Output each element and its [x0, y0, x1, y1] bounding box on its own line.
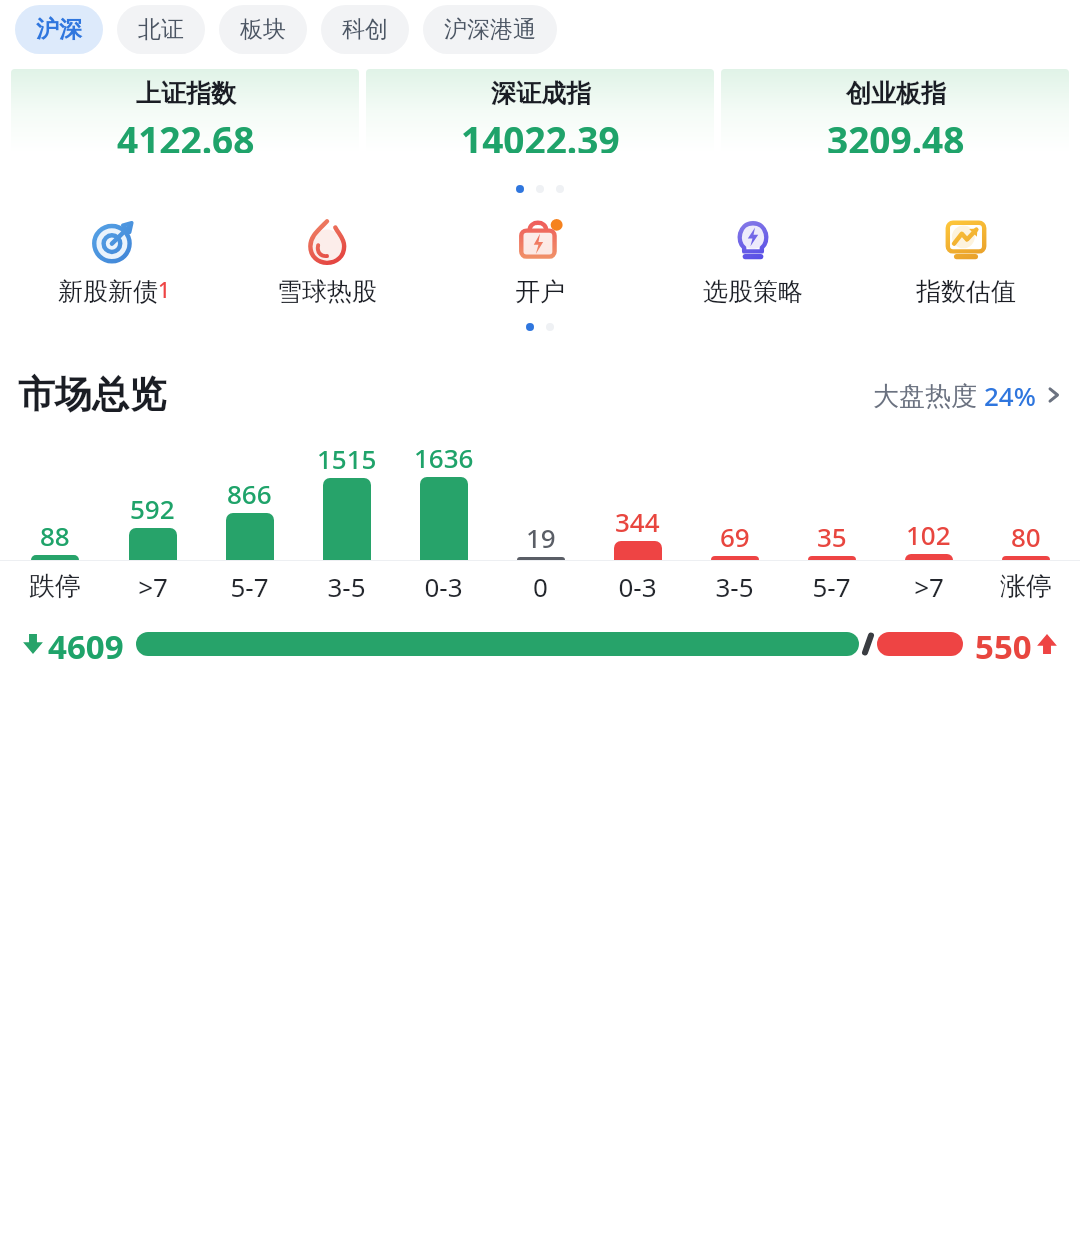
staticText: 指数估值 [916, 276, 1016, 307]
staticText: 550 [975, 624, 1032, 664]
button[interactable]: 35 [783, 519, 880, 560]
button[interactable]: 866 [201, 476, 298, 560]
staticText: 35 [817, 519, 847, 554]
button[interactable]: 新股新债 [8, 215, 220, 307]
staticText: 北证 [138, 15, 184, 44]
button[interactable]: 上证指数 [11, 69, 359, 153]
button[interactable]: 板块 [219, 5, 307, 54]
staticText: 沪深港通 [444, 15, 536, 44]
staticText: 开户 [515, 276, 565, 307]
staticText: 3-5 [327, 569, 366, 604]
staticText: 新股新债 [58, 276, 158, 307]
button[interactable]: 北证 [117, 5, 205, 54]
staticText: 1636 [414, 440, 474, 475]
staticText: 866 [227, 476, 272, 511]
staticText: 深证成指 [491, 78, 591, 109]
staticText: 科创 [342, 15, 388, 44]
other: Down [22, 633, 44, 655]
button[interactable]: 大盘热度 [873, 377, 1062, 413]
staticText: 0-3 [424, 569, 463, 604]
button[interactable]: 592 [104, 491, 201, 560]
staticText: 市场总览 [18, 371, 166, 418]
staticText: 4122.68 [117, 114, 255, 153]
staticText: 板块 [240, 15, 286, 44]
staticText: 上证指数 [136, 78, 236, 109]
staticText: 0 [533, 569, 548, 604]
staticText: >7 [914, 569, 944, 604]
button[interactable]: 创业板指 [721, 69, 1069, 153]
staticText: 4609 [48, 624, 124, 664]
staticText: 3-5 [715, 569, 754, 604]
button[interactable]: 344 [589, 504, 686, 560]
staticText: 14022.39 [461, 114, 620, 153]
staticText: 沪深 [36, 15, 82, 44]
button[interactable]: 选股策略 [646, 215, 859, 307]
button[interactable]: 科创 [321, 5, 409, 54]
staticText: 5-7 [812, 569, 851, 604]
button[interactable]: 19 [492, 520, 589, 560]
button[interactable]: 88 [6, 518, 104, 560]
button[interactable]: 深证成指 [366, 69, 714, 153]
staticText: 5-7 [230, 569, 269, 604]
button[interactable]: 69 [686, 519, 783, 560]
staticText: 592 [130, 491, 175, 526]
other: Up [1036, 633, 1058, 655]
staticText: 3209.48 [827, 114, 965, 153]
staticText: 69 [720, 519, 750, 554]
button[interactable]: 1636 [395, 440, 492, 560]
staticText: 大盘热度 [873, 377, 984, 413]
staticText: 19 [526, 520, 556, 555]
button[interactable]: 雪球热股 [220, 215, 433, 307]
staticText: 102 [906, 517, 951, 552]
button[interactable]: 开户 [433, 215, 646, 307]
staticText: >7 [138, 569, 168, 604]
staticText: 选股策略 [703, 276, 803, 307]
staticText: 涨停 [1000, 570, 1052, 603]
staticText: 1515 [317, 441, 377, 476]
button[interactable]: 80 [977, 519, 1074, 560]
button[interactable]: 102 [880, 517, 977, 560]
staticText: 创业板指 [846, 78, 946, 109]
staticText: 跌停 [29, 570, 81, 603]
staticText: 24% [984, 378, 1036, 413]
button[interactable]: 指数估值 [859, 215, 1072, 307]
button[interactable]: 沪深 [15, 5, 103, 54]
staticText: 80 [1011, 519, 1041, 554]
button[interactable]: 1515 [298, 441, 395, 560]
other: More [1046, 387, 1062, 403]
staticText: 0-3 [618, 569, 657, 604]
staticText: 1 [158, 276, 171, 305]
staticText: 雪球热股 [277, 276, 377, 307]
staticText: 344 [615, 504, 660, 539]
button[interactable]: 沪深港通 [423, 5, 557, 54]
staticText: 88 [40, 518, 70, 553]
